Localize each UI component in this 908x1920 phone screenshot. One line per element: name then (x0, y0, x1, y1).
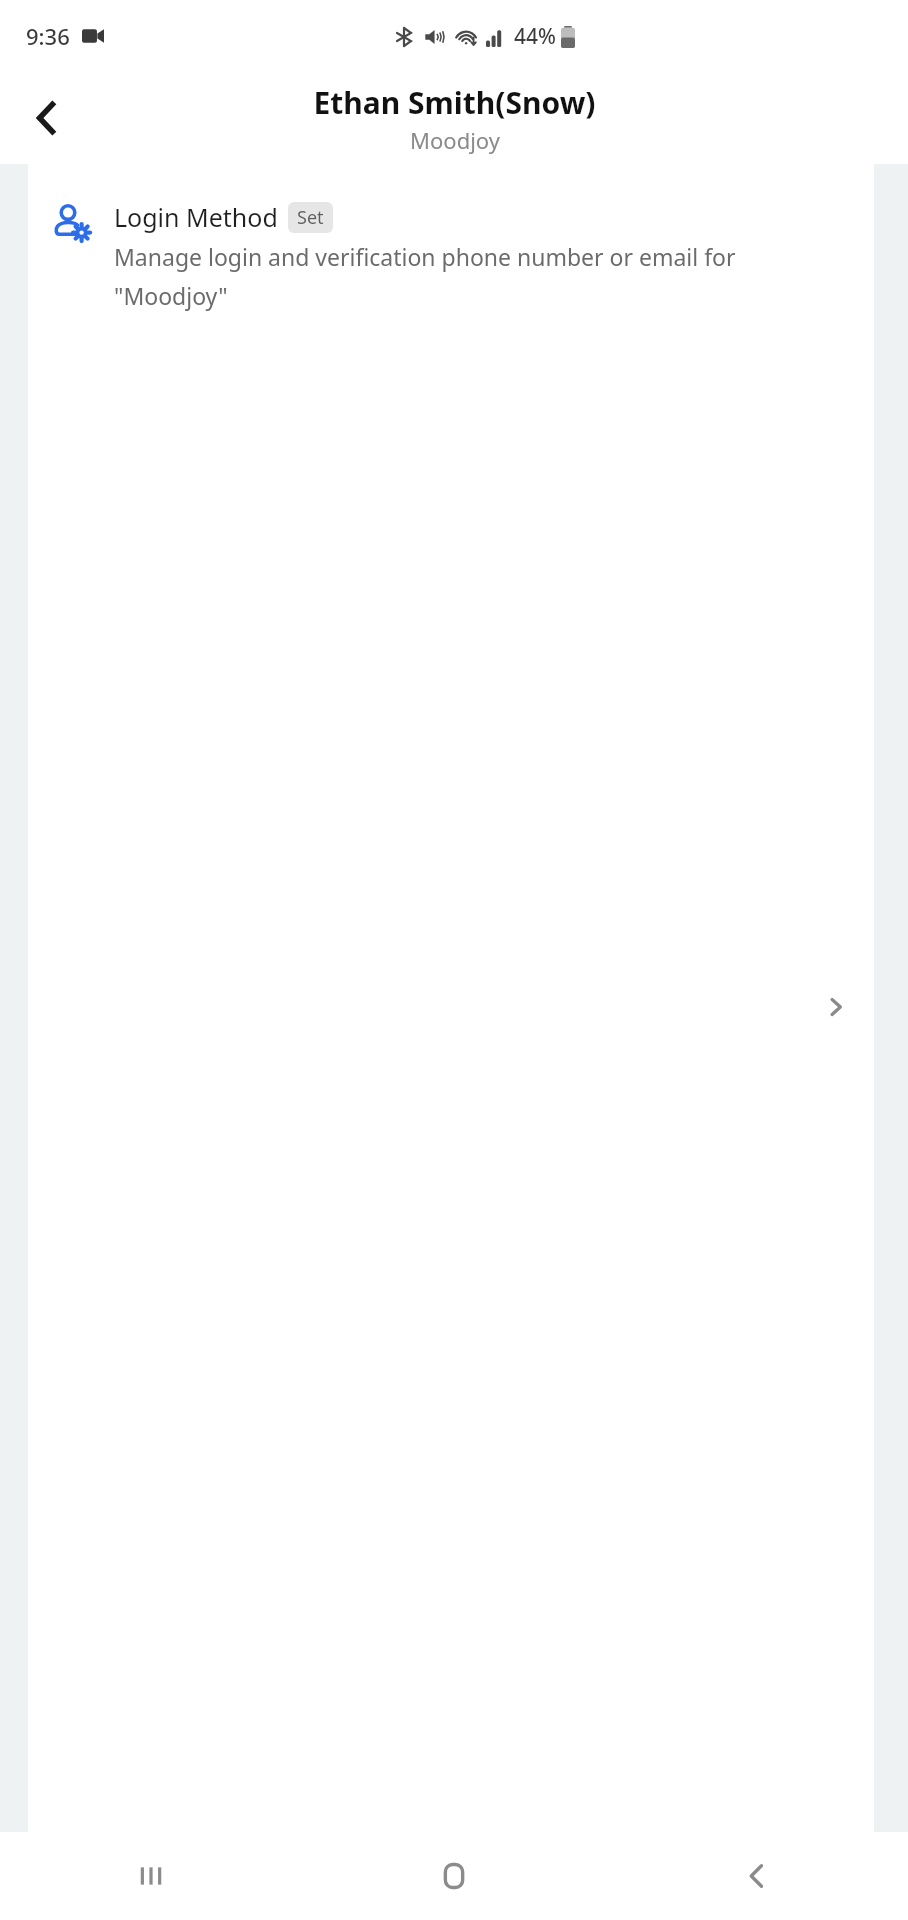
staticText: Moodjoy (410, 125, 500, 155)
staticText: 44% (514, 22, 556, 51)
button[interactable]: Login Method (28, 178, 874, 1832)
staticText: Login Method (114, 200, 278, 234)
button[interactable]: Recents (0, 1832, 302, 1920)
staticText: 9:36 (26, 21, 70, 51)
staticText: Set (297, 205, 324, 230)
button[interactable]: Back (605, 1832, 908, 1920)
button[interactable]: Home (302, 1832, 605, 1920)
staticText: Manage login and verification phone numb… (114, 241, 804, 312)
button[interactable]: Back (14, 85, 80, 151)
staticText: Ethan Smith(Snow) (313, 82, 596, 123)
